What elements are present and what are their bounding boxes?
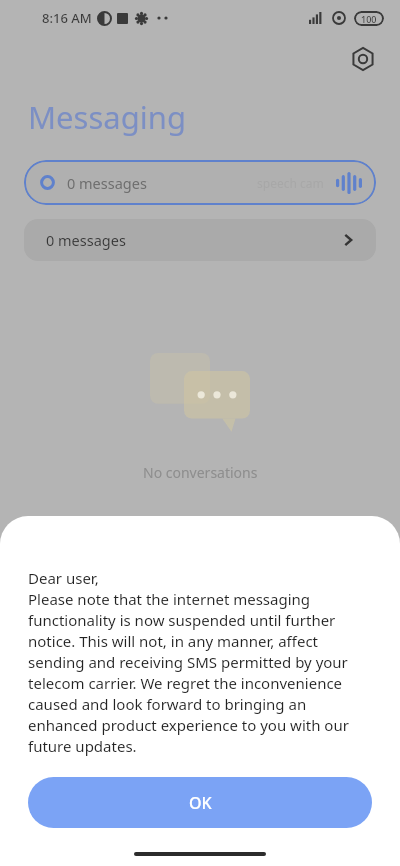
button[interactable]: 0 messages [24, 219, 376, 261]
staticText: Messaging [28, 96, 186, 138]
staticText: 0 messages [46, 230, 126, 250]
button[interactable]: Settings [346, 42, 380, 76]
staticText: Dear user, Please note that the internet… [28, 568, 372, 757]
staticText: 100 [361, 13, 377, 25]
staticText: 0 messages [67, 173, 147, 193]
staticText: 8:16 AM [42, 9, 92, 27]
button[interactable]: 0 messages [24, 160, 376, 205]
staticText: OK [189, 792, 212, 814]
staticText: No conversations [143, 463, 258, 482]
button[interactable]: OK [28, 777, 372, 828]
